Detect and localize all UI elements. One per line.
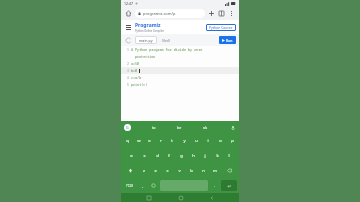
button[interactable]: y [178,133,190,148]
staticText: Programiz [135,22,161,29]
button[interactable]: Shift [122,163,138,178]
staticText: z [143,168,145,174]
button[interactable]: t [166,133,178,148]
button[interactable]: k [211,148,223,163]
staticText: y [183,138,186,144]
button[interactable]: n [197,163,209,178]
button[interactable]: h [187,148,199,163]
button[interactable]: New tab [207,9,216,18]
button[interactable]: f [163,148,175,163]
button[interactable]: Reset [124,36,132,44]
staticText: j [204,153,206,159]
button[interactable]: Home [124,9,133,18]
staticText: 3 [127,69,129,73]
staticText: e [148,138,151,144]
staticText: Python Course [209,25,233,30]
staticText: c=a/b [131,75,142,80]
button[interactable]: a [125,148,138,163]
staticText: l [228,153,230,159]
staticText: p [231,138,234,144]
staticText: g [180,153,183,159]
staticText: print(c) [131,82,148,87]
button[interactable]: Backspace [221,163,238,178]
staticText: n [202,168,205,174]
staticText: ok [203,125,208,130]
button[interactable]: x [149,163,161,178]
button[interactable]: Google Assistant [124,124,131,131]
staticText: 1 [127,48,129,52]
button[interactable]: Shell [160,36,173,44]
button[interactable]: main.py [135,36,157,44]
button[interactable]: e [144,133,155,148]
staticText: programiz.com/p [143,11,176,16]
staticText: b=0 [131,68,138,73]
staticText: Run [226,38,233,43]
staticText: 2 [127,62,129,66]
staticText: be [177,125,182,130]
button[interactable]: Recents [144,193,153,202]
button[interactable]: m [209,163,221,178]
button[interactable]: d [151,148,163,163]
button[interactable]: programiz.com/p [135,9,205,18]
button[interactable]: Emoji [148,179,159,192]
button[interactable]: . [209,179,220,192]
button[interactable]: s [138,148,151,163]
staticText: c [166,168,169,174]
staticText: 12:47 [124,1,133,6]
staticText: m [213,168,217,174]
button[interactable]: l [223,148,235,163]
staticText: # Python program for divide by zero [131,47,203,52]
staticText: protection [135,54,156,59]
staticText: 5 [127,83,129,87]
staticText: to [152,125,156,130]
staticText: q [126,138,129,144]
button[interactable]: Run [219,36,236,44]
staticText: u [195,138,198,144]
button[interactable]: q [122,133,133,148]
staticText: d [156,153,159,159]
staticText: w [137,138,141,144]
staticText: x [154,168,157,174]
button[interactable]: j [199,148,211,163]
button[interactable]: Menu [124,23,133,32]
button[interactable]: b [185,163,197,178]
staticText: a [130,153,133,159]
button[interactable]: i [202,133,214,148]
staticText: a=50 [131,61,140,66]
button[interactable]: w [133,133,144,148]
staticText: r [160,138,162,144]
button[interactable]: ?123 [122,179,137,192]
button[interactable]: g [175,148,187,163]
staticText: f [168,153,170,159]
staticText: Python Online Compiler [135,29,165,33]
staticText: b [190,168,193,174]
staticText: ?123 [126,184,133,188]
staticText: Shell [162,38,171,43]
button[interactable]: Enter [221,180,237,191]
button[interactable]: v [173,163,185,178]
staticText: h [192,153,195,159]
staticText: main.py [139,38,153,43]
button[interactable]: r [155,133,166,148]
button[interactable]: u [190,133,202,148]
staticText: o [219,138,222,144]
staticText: G [126,125,129,130]
button[interactable]: Voice input [229,124,236,131]
button[interactable]: z [138,163,149,178]
button[interactable]: Switch tabs [217,9,226,18]
staticText: k [216,153,219,159]
button[interactable]: Python Course [206,24,236,31]
button[interactable]: More options [227,9,236,18]
button[interactable]: , [137,179,148,192]
button[interactable]: c [161,163,173,178]
button[interactable]: o [214,133,226,148]
staticText: , [142,183,144,188]
staticText: s [143,153,146,159]
button[interactable]: p [226,133,238,148]
staticText: 4 [127,76,129,80]
staticText: . [214,183,216,188]
staticText: v [178,168,181,174]
button[interactable]: Back [207,193,216,202]
button[interactable]: Home [176,193,185,202]
